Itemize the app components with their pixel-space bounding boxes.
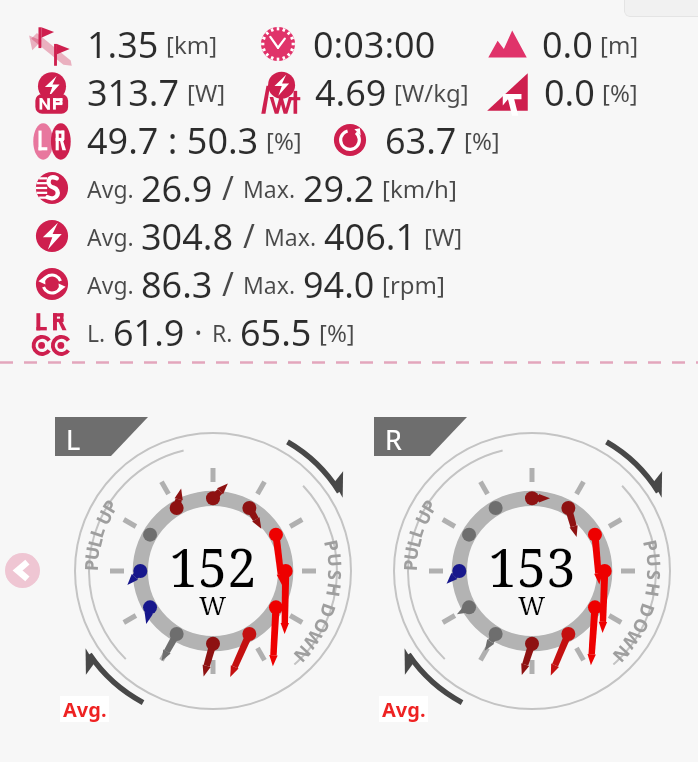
staticText: D <box>313 600 342 622</box>
staticText: 65.5 <box>240 308 312 356</box>
staticText: S <box>322 570 347 580</box>
staticText: 94.0 <box>303 260 375 308</box>
staticText: L <box>401 533 428 550</box>
staticText: 49.7 : 50.3 <box>87 116 259 164</box>
staticText: P <box>398 558 423 572</box>
staticText: O <box>307 614 336 638</box>
staticText: 0.0 <box>544 68 595 116</box>
staticText: Max. <box>243 173 296 204</box>
staticText: H <box>639 581 666 599</box>
staticText: 153 <box>488 531 576 602</box>
staticText: [%] <box>319 316 355 349</box>
staticText: [m] <box>600 28 639 61</box>
staticText: 86.3 <box>141 260 213 308</box>
staticText: N <box>607 640 636 668</box>
staticText: P <box>97 494 124 518</box>
staticText: R. <box>212 317 233 348</box>
staticText: Max. <box>264 221 317 252</box>
staticText: · <box>194 310 203 354</box>
staticText: P <box>318 538 345 554</box>
staticText: / <box>222 166 234 210</box>
staticText: U <box>640 552 666 568</box>
staticText: [W] <box>187 76 226 109</box>
staticText: [km/h] <box>382 172 457 205</box>
staticText: 4.69 <box>315 68 387 116</box>
staticText: Avg. <box>63 696 107 722</box>
staticText: 0.0 <box>542 20 593 68</box>
staticText: U <box>398 544 425 562</box>
staticText: P <box>79 558 104 572</box>
staticText: W <box>199 587 227 622</box>
staticText: U <box>79 544 106 562</box>
staticText: L <box>82 533 109 550</box>
staticText: 313.7 <box>87 68 180 116</box>
staticText: 406.1 <box>324 212 417 260</box>
staticText: L <box>84 522 111 541</box>
staticText: Avg. <box>382 696 426 722</box>
staticText: W <box>518 587 546 622</box>
staticText: P <box>416 494 443 518</box>
staticText: [km] <box>166 28 218 61</box>
staticText: 304.8 <box>141 212 234 260</box>
staticText: O <box>626 614 655 638</box>
staticText: 63.7 <box>385 116 457 164</box>
staticText: 29.2 <box>303 164 375 212</box>
staticText: Avg. <box>87 221 134 252</box>
staticText: P <box>637 538 664 554</box>
staticText: W <box>297 625 328 654</box>
staticText: [%] <box>602 76 638 109</box>
staticText: U <box>409 505 438 529</box>
staticText: R <box>385 421 402 458</box>
staticText: L <box>66 421 81 458</box>
staticText: U <box>90 505 119 529</box>
button[interactable]: Back <box>5 553 40 588</box>
staticText: 1.35 <box>87 20 159 68</box>
staticText: [W] <box>424 220 463 253</box>
staticText: Avg. <box>87 173 134 204</box>
staticText: [%] <box>464 124 500 157</box>
staticText: N <box>288 640 317 668</box>
staticText: Avg. <box>87 269 134 300</box>
staticText: 26.9 <box>141 164 213 212</box>
staticText: W <box>616 625 647 654</box>
staticText: L <box>403 522 430 541</box>
staticText: 0:03:00 <box>313 20 436 68</box>
staticText: / <box>243 214 255 258</box>
staticText: 152 <box>169 531 257 602</box>
staticText: S <box>641 570 666 580</box>
staticText: D <box>632 600 661 622</box>
staticText: L. <box>87 317 106 348</box>
staticText: Max. <box>243 269 296 300</box>
staticText: U <box>321 552 347 568</box>
staticText: [rpm] <box>382 268 445 301</box>
staticText: / <box>222 262 234 306</box>
staticText: [%] <box>266 124 302 157</box>
staticText: [W/kg] <box>394 76 469 109</box>
staticText: H <box>320 581 347 599</box>
staticText: 61.9 <box>113 308 185 356</box>
